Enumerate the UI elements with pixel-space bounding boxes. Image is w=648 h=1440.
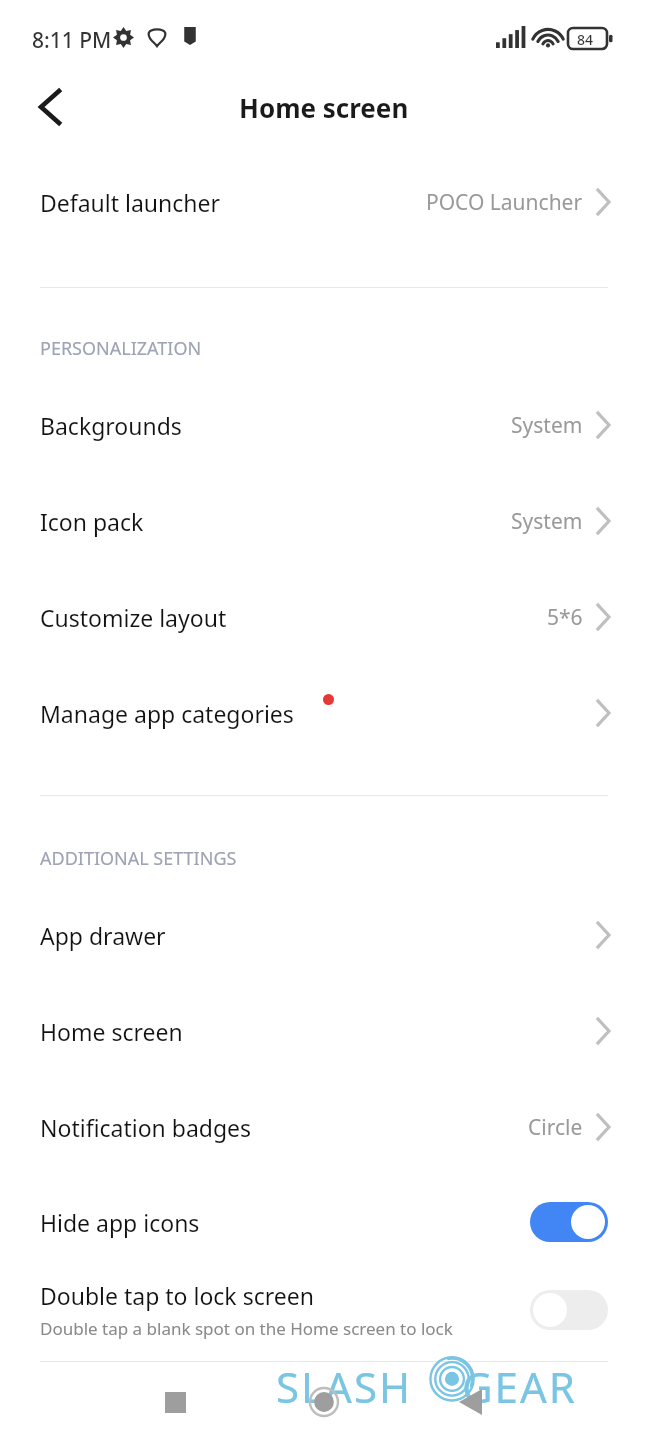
button[interactable]: Toggle on [530,1202,608,1242]
button[interactable]: App drawer [0,887,648,983]
staticText: Manage app categories [40,698,294,729]
button[interactable]: Manage app categories [0,665,648,761]
button[interactable]: Notification badges [0,1079,648,1175]
button[interactable]: Customize layout [0,569,648,665]
staticText: 84 [577,30,594,49]
staticText: 5*6 [547,603,583,632]
staticText: Home screen [40,1016,183,1047]
staticText: Circle [528,1113,583,1142]
staticText: 8:11 PM [32,26,112,55]
staticText: Icon pack [40,506,144,537]
staticText: Customize layout [40,602,227,633]
staticText: Home screen [239,90,409,125]
button[interactable]: Hide app icons [0,1174,648,1270]
staticText: Double tap to lock screen [40,1280,314,1311]
button[interactable]: Backgrounds [0,377,648,473]
button[interactable]: Double tap to lock screen [0,1262,648,1358]
button[interactable]: Home [294,1372,354,1432]
button[interactable]: Home screen [0,983,648,1079]
button[interactable]: Toggle off [530,1290,608,1330]
staticText: System [511,507,583,536]
button[interactable]: Back [14,71,86,143]
staticText: GEAR [462,1358,577,1415]
button[interactable]: Recents [145,1372,205,1432]
staticText: ADDITIONAL SETTINGS [40,846,237,871]
staticText: SLASH [276,1358,413,1415]
staticText: App drawer [40,920,166,951]
button[interactable]: Default launcher [0,154,648,250]
staticText: Double tap a blank spot on the Home scre… [40,1317,453,1340]
staticText: Backgrounds [40,410,182,441]
staticText: PERSONALIZATION [40,336,202,361]
staticText: Default launcher [40,187,220,218]
staticText: Notification badges [40,1112,252,1143]
button[interactable]: Icon pack [0,473,648,569]
staticText: System [511,411,583,440]
button[interactable]: Back [440,1372,500,1432]
staticText: POCO Launcher [426,188,583,217]
staticText: Hide app icons [40,1207,200,1238]
